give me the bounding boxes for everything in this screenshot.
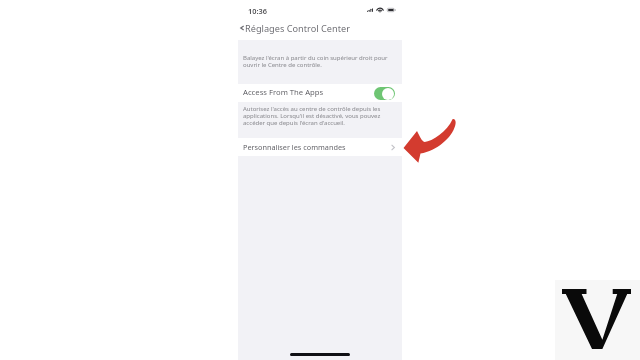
staticText: Autorisez l'accès au centre de contrôle … (243, 105, 383, 127)
button[interactable]: Access From The Apps (238, 84, 402, 102)
other: Back (239, 24, 245, 32)
staticText: Personnaliser les commandes (243, 142, 346, 152)
button[interactable]: Access From The Apps toggle (374, 87, 395, 100)
button[interactable]: Personnaliser les commandes (238, 138, 402, 156)
button[interactable]: Back (238, 21, 402, 35)
staticText: Balayez l'écran à partir du coin supérie… (243, 54, 396, 69)
staticText: 10:36 (248, 6, 267, 16)
staticText: Réglages Control Center (245, 22, 350, 35)
staticText: Access From The Apps (243, 87, 324, 97)
